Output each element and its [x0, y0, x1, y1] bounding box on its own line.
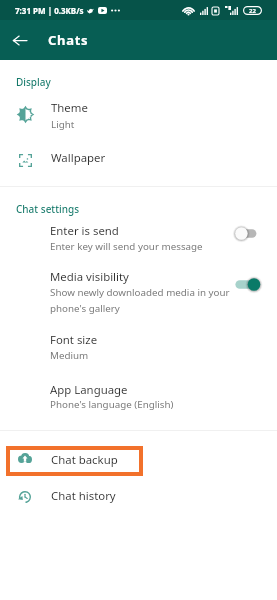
- staticText: Media visibility: [50, 269, 129, 285]
- button[interactable]: Media visibility: [0, 266, 277, 322]
- staticText: Font size: [50, 332, 98, 348]
- button[interactable]: Enter is send: [0, 218, 277, 260]
- button[interactable]: Wallpaper: [0, 141, 277, 179]
- staticText: Enter is send: [50, 223, 119, 239]
- staticText: Theme: [51, 100, 88, 116]
- staticText: Show newly downloaded media in your phon…: [50, 286, 230, 315]
- staticText: Light: [51, 118, 75, 131]
- button[interactable]: Toggle: [235, 227, 262, 240]
- staticText: Chat settings: [16, 202, 80, 216]
- staticText: Enter key will send your message: [50, 240, 230, 253]
- staticText: Chat backup: [51, 452, 118, 468]
- button[interactable]: Chat history: [0, 481, 277, 511]
- button[interactable]: Chat backup: [0, 446, 277, 476]
- button[interactable]: App Language: [0, 380, 277, 420]
- staticText: Medium: [50, 349, 89, 362]
- button[interactable]: Theme: [0, 94, 277, 134]
- staticText: App Language: [50, 382, 128, 398]
- button[interactable]: Back: [7, 20, 33, 60]
- staticText: Chats: [48, 31, 89, 49]
- staticText: Wallpaper: [51, 150, 106, 166]
- staticText: Phone's language (English): [50, 398, 174, 411]
- staticText: 22: [249, 7, 256, 15]
- button[interactable]: Font size: [0, 330, 277, 370]
- staticText: Display: [16, 75, 51, 89]
- staticText: Chat history: [51, 488, 116, 504]
- staticText: 7:31 PM | 0.3KB/s: [15, 5, 84, 16]
- button[interactable]: Toggle: [235, 278, 262, 291]
